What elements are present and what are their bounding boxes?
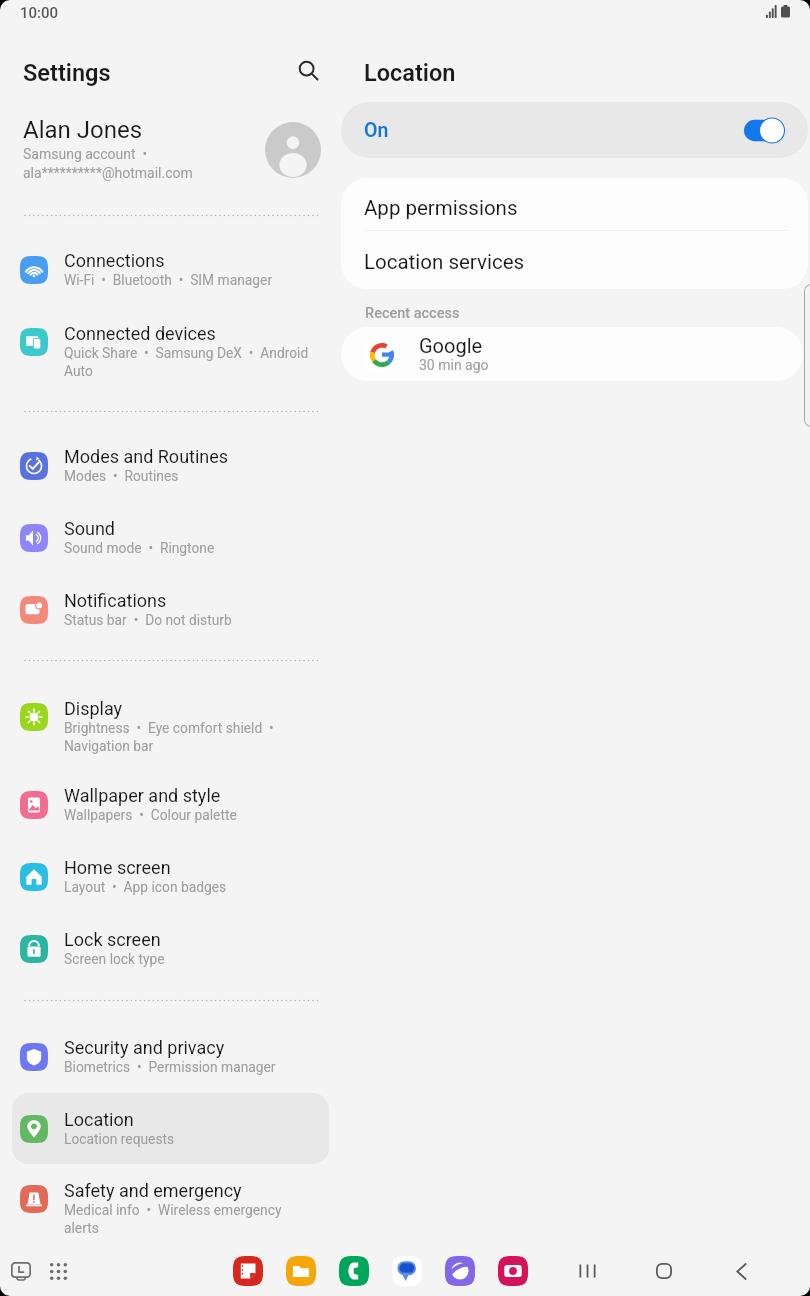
- staticText: Safety and emergency: [64, 1180, 242, 1201]
- staticText: Connected devices: [64, 323, 216, 344]
- staticText: Wi-Fi • Bluetooth • SIM manager: [64, 272, 273, 288]
- staticText: Location requests: [64, 1131, 175, 1147]
- staticText: Security and privacy: [64, 1037, 225, 1058]
- button[interactable]: Recents: [4, 1254, 38, 1288]
- staticText: Sound mode • Ringtone: [64, 540, 215, 556]
- button[interactable]: Lock screen: [12, 913, 329, 984]
- button[interactable]: Notifications: [12, 574, 329, 645]
- button[interactable]: Search: [291, 53, 325, 87]
- staticText: Notifications: [64, 590, 167, 611]
- staticText: Biometrics • Permission manager: [64, 1059, 276, 1075]
- button[interactable]: Display: [12, 682, 329, 770]
- button[interactable]: Alan Jones: [0, 104, 340, 186]
- button[interactable]: phone: [339, 1256, 369, 1286]
- staticText: Layout • App icon badges: [64, 879, 227, 895]
- staticText: Modes • Routines: [64, 468, 179, 484]
- button[interactable]: notes: [233, 1256, 263, 1286]
- staticText: Location services: [364, 250, 525, 274]
- staticText: Alan Jones: [23, 116, 143, 144]
- staticText: 30 min ago: [419, 357, 489, 373]
- staticText: Quick Share • Samsung DeX • Android Auto: [64, 345, 309, 380]
- button[interactable]: Home: [648, 1255, 680, 1287]
- button[interactable]: Recent apps: [571, 1255, 603, 1287]
- button[interactable]: Location: [12, 1093, 329, 1164]
- button[interactable]: msg: [392, 1256, 422, 1286]
- button[interactable]: Google: [341, 327, 803, 381]
- staticText: Connections: [64, 250, 165, 271]
- button[interactable]: Location services: [341, 231, 808, 289]
- staticText: Wallpapers • Colour palette: [64, 807, 237, 823]
- staticText: Wallpaper and style: [64, 785, 221, 806]
- staticText: Samsung account • ala**********@hotmail.…: [23, 146, 193, 181]
- staticText: 10:00: [20, 4, 59, 22]
- staticText: Display: [64, 698, 123, 719]
- button[interactable]: Apps: [41, 1254, 75, 1288]
- staticText: Brightness • Eye comfort shield • Naviga…: [64, 720, 274, 755]
- staticText: Location: [364, 59, 456, 87]
- staticText: Settings: [23, 59, 111, 87]
- staticText: Home screen: [64, 857, 171, 878]
- button[interactable]: internet: [445, 1256, 475, 1286]
- button[interactable]: files: [286, 1256, 316, 1286]
- staticText: Sound: [64, 518, 115, 539]
- staticText: Google: [419, 334, 483, 357]
- button[interactable]: Home screen: [12, 841, 329, 912]
- staticText: Screen lock type: [64, 951, 165, 967]
- staticText: Location: [64, 1109, 134, 1130]
- button[interactable]: Security and privacy: [12, 1021, 329, 1092]
- button[interactable]: Connected devices: [12, 307, 329, 395]
- button[interactable]: On: [341, 102, 808, 158]
- staticText: On: [364, 119, 389, 142]
- staticText: Status bar • Do not disturb: [64, 612, 232, 628]
- button[interactable]: Back: [725, 1255, 757, 1287]
- staticText: Medical info • Wireless emergency alerts: [64, 1202, 282, 1237]
- button[interactable]: camera: [498, 1256, 528, 1286]
- staticText: Lock screen: [64, 929, 161, 950]
- button[interactable]: App permissions: [341, 178, 808, 230]
- button[interactable]: Modes and Routines: [12, 430, 329, 501]
- button[interactable]: Connections: [12, 234, 329, 305]
- staticText: App permissions: [364, 196, 518, 220]
- button[interactable]: Safety and emergency: [12, 1164, 329, 1252]
- staticText: Recent access: [365, 305, 460, 322]
- staticText: Modes and Routines: [64, 446, 229, 467]
- button[interactable]: Sound: [12, 502, 329, 573]
- button[interactable]: Wallpaper and style: [12, 769, 329, 840]
